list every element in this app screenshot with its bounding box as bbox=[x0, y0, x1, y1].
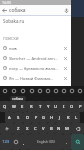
button[interactable]: Sketcher — Android ann… bbox=[0, 53, 71, 63]
button[interactable]: O bbox=[68, 101, 76, 112]
button[interactable]: T bbox=[36, 101, 44, 112]
button[interactable]: B bbox=[47, 123, 55, 134]
staticText: нож bbox=[9, 46, 60, 51]
button[interactable]: Keyboard tool 6 bbox=[44, 86, 52, 96]
button[interactable]: , bbox=[20, 134, 28, 150]
button[interactable]: Y bbox=[44, 101, 52, 112]
staticText: N bbox=[57, 126, 61, 132]
button[interactable]: F bbox=[32, 112, 40, 123]
button[interactable]: Keyboard tool 2 bbox=[9, 86, 18, 96]
button[interactable]: R bbox=[27, 101, 36, 112]
button[interactable]: Z bbox=[14, 123, 23, 134]
button[interactable]: Search bbox=[71, 134, 84, 150]
button[interactable]: J bbox=[56, 112, 64, 123]
staticText: P bbox=[79, 104, 82, 110]
staticText: B bbox=[50, 126, 53, 132]
button[interactable]: Keyboard tool 4 bbox=[27, 86, 36, 96]
button[interactable]: Keyboard tool 8 bbox=[60, 86, 68, 96]
button[interactable]: Remove from history bbox=[60, 53, 71, 63]
button[interactable]: Shift bbox=[0, 123, 14, 134]
button[interactable]: Emoji bbox=[12, 134, 20, 150]
button[interactable]: Backspace bbox=[71, 123, 84, 134]
staticText: M bbox=[65, 126, 69, 132]
staticText: R bbox=[30, 104, 33, 110]
staticText: W bbox=[12, 104, 16, 110]
staticText: G bbox=[42, 115, 46, 121]
button[interactable]: собака bbox=[12, 96, 24, 101]
staticText: собака bbox=[12, 96, 24, 101]
staticText: C bbox=[34, 126, 37, 132]
button[interactable]: G bbox=[40, 112, 48, 123]
button[interactable]: Remove from history bbox=[60, 73, 71, 83]
button[interactable]: N bbox=[55, 123, 63, 134]
button[interactable]: M bbox=[63, 123, 71, 134]
staticText: Q bbox=[3, 104, 7, 110]
button[interactable]: нож bbox=[0, 43, 71, 53]
staticText: E bbox=[21, 104, 24, 110]
button[interactable]: . bbox=[63, 134, 71, 150]
staticText: ПОИСКИ bbox=[3, 36, 19, 41]
staticText: F bbox=[35, 115, 38, 121]
button[interactable]: 123 bbox=[0, 134, 12, 150]
button[interactable]: Keyboard tool 9 bbox=[68, 86, 76, 96]
button[interactable]: P bbox=[76, 101, 84, 112]
button[interactable]: W bbox=[9, 101, 18, 112]
staticText: собака bbox=[9, 7, 26, 14]
staticText: English (US) bbox=[37, 140, 55, 144]
staticText: Sketcher — Android ann… bbox=[9, 56, 60, 61]
staticText: V bbox=[42, 126, 45, 132]
button[interactable]: English (US) bbox=[28, 134, 63, 150]
staticText: Z bbox=[17, 126, 20, 132]
staticText: 14:05 bbox=[2, 0, 11, 5]
button[interactable]: Keyboard tool 3 bbox=[18, 86, 27, 96]
staticText: , bbox=[23, 140, 25, 145]
staticText: L bbox=[75, 115, 78, 121]
button[interactable]: I bbox=[60, 101, 68, 112]
button[interactable]: Sobaka.ru bbox=[0, 16, 71, 26]
button[interactable]: U bbox=[52, 101, 60, 112]
button[interactable]: Remove from history bbox=[60, 63, 71, 73]
staticText: J bbox=[59, 115, 61, 121]
button[interactable]: Keyboard tool 1 bbox=[0, 86, 9, 96]
button[interactable]: K bbox=[64, 112, 72, 123]
button[interactable]: H bbox=[48, 112, 56, 123]
button[interactable]: Voice search bbox=[62, 5, 71, 15]
button[interactable]: A bbox=[5, 112, 14, 123]
button[interactable]: Keyboard tool 7 bbox=[52, 86, 60, 96]
staticText: D bbox=[26, 115, 30, 121]
staticText: A bbox=[8, 115, 11, 121]
staticText: K bbox=[67, 115, 70, 121]
button[interactable]: Ян — Новый Филимо… bbox=[0, 73, 71, 83]
staticText: U bbox=[54, 104, 58, 110]
staticText: Y bbox=[47, 104, 50, 110]
button[interactable]: C bbox=[31, 123, 39, 134]
staticText: Ян — Новый Филимо… bbox=[9, 76, 60, 81]
button[interactable]: D bbox=[23, 112, 32, 123]
staticText: . bbox=[66, 140, 68, 145]
staticText: O bbox=[70, 104, 74, 110]
button[interactable]: E bbox=[18, 101, 27, 112]
staticText: Sobaka.ru bbox=[3, 18, 25, 24]
button[interactable]: Q bbox=[0, 101, 9, 112]
button[interactable]: Keyboard tool 10 bbox=[76, 86, 84, 96]
staticText: погр — буквально жало… bbox=[9, 66, 60, 71]
button[interactable]: V bbox=[39, 123, 47, 134]
button[interactable]: X bbox=[23, 123, 31, 134]
button[interactable]: погр — буквально жало… bbox=[0, 63, 71, 73]
staticText: T bbox=[39, 104, 42, 110]
button[interactable]: Back bbox=[0, 5, 9, 15]
button[interactable]: Remove from history bbox=[60, 43, 71, 53]
button[interactable]: L bbox=[72, 112, 80, 123]
staticText: X bbox=[26, 126, 29, 132]
button[interactable]: Keyboard tool 5 bbox=[36, 86, 44, 96]
staticText: 123 bbox=[2, 139, 10, 145]
staticText: S bbox=[17, 115, 20, 121]
staticText: I bbox=[63, 104, 65, 110]
staticText: H bbox=[50, 115, 54, 121]
button[interactable]: S bbox=[14, 112, 23, 123]
